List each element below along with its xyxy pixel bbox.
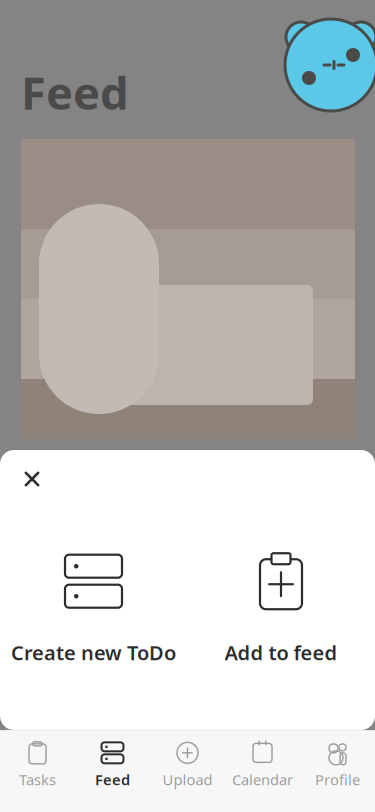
button[interactable]: Create new ToDo <box>0 547 187 672</box>
staticText: Feed <box>95 770 130 789</box>
staticText: Create new ToDo <box>11 639 176 666</box>
staticText: Calendar <box>232 770 293 789</box>
button[interactable]: Tasks <box>0 731 75 793</box>
staticText: Add to feed <box>224 639 337 666</box>
staticText: Upload <box>162 770 212 789</box>
staticText: Profile <box>315 770 360 789</box>
button[interactable]: Profile <box>300 731 375 793</box>
button[interactable]: Calendar <box>225 731 300 793</box>
staticText: Feed <box>21 62 129 122</box>
button[interactable]: Feed <box>75 731 150 793</box>
button[interactable]: Upload <box>150 731 225 793</box>
staticText: Tasks <box>19 770 56 789</box>
button[interactable]: Close <box>10 457 54 501</box>
button[interactable]: Add to feed <box>187 547 375 672</box>
